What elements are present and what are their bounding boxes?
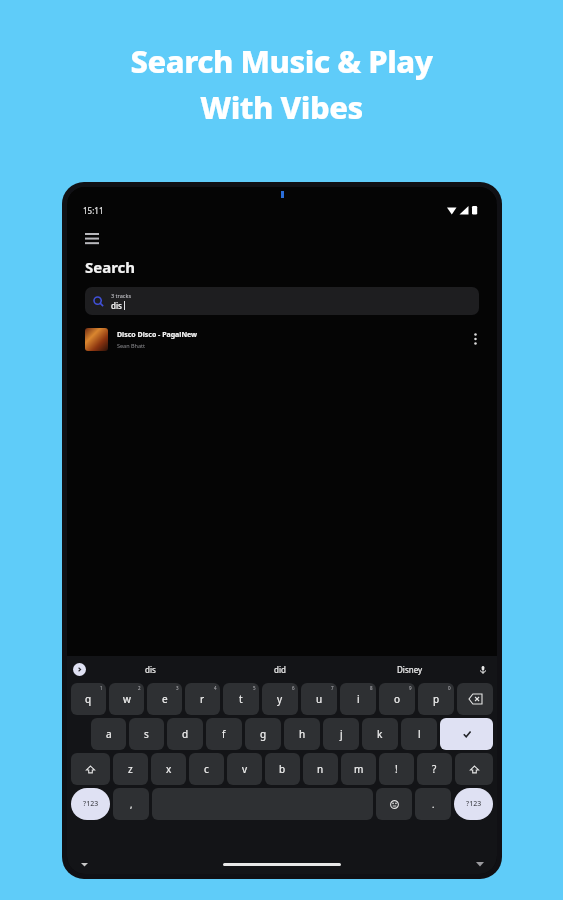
staticText: b [279,762,286,776]
button[interactable]: did [215,656,345,683]
staticText: , [130,798,133,810]
staticText: t [239,692,243,706]
button[interactable]: c [189,753,224,785]
button[interactable]: ?123 [454,788,493,820]
button[interactable]: q [71,683,106,715]
button[interactable]: m [341,753,376,785]
button[interactable]: a [91,718,126,750]
staticText: 4 [214,685,217,691]
button[interactable]: n [303,753,338,785]
button[interactable]: ? [417,753,452,785]
staticText: d [182,727,189,741]
button[interactable]: Comma [113,788,149,820]
button[interactable]: z [113,753,148,785]
staticText: 9 [409,685,412,691]
button[interactable]: v [227,753,262,785]
staticText: n [317,762,324,776]
staticText: a [106,727,112,741]
staticText: p [433,692,440,706]
staticText: g [260,727,267,741]
button[interactable]: b [265,753,300,785]
button[interactable]: ! [379,753,414,785]
staticText: e [162,692,168,706]
staticText: s [144,727,149,741]
button[interactable]: h [284,718,320,750]
staticText: u [316,692,323,706]
button[interactable]: t [223,683,259,715]
button[interactable]: s [129,718,164,750]
staticText: k [377,727,383,741]
button[interactable]: f [206,718,242,750]
button[interactable]: w [109,683,144,715]
staticText: 3 tracks [111,292,132,299]
button[interactable]: Enter [440,718,493,750]
staticText: 5 [253,685,256,691]
button[interactable]: Backspace [457,683,493,715]
staticText: c [204,762,209,776]
button[interactable]: Disney [345,656,475,683]
staticText: q [85,692,92,706]
button[interactable]: i [340,683,376,715]
staticText: m [354,762,364,776]
button[interactable]: p [418,683,454,715]
button[interactable]: o [379,683,415,715]
staticText: ?123 [83,799,99,809]
button[interactable]: g [245,718,281,750]
button[interactable]: ?123 [71,788,110,820]
button[interactable]: l [401,718,437,750]
staticText: Disco Disco - PagalNew [117,330,198,340]
staticText: Sean Bhatt [117,342,146,349]
button[interactable]: j [323,718,359,750]
button[interactable]: d [167,718,203,750]
staticText: . [432,798,435,810]
staticText: 8 [370,685,373,691]
staticText: 1 [100,685,103,691]
staticText: v [242,762,248,776]
staticText: x [166,762,172,776]
staticText: did [274,664,286,675]
button[interactable]: More options [465,329,485,349]
button[interactable]: k [362,718,398,750]
button[interactable]: Emoji [376,788,412,820]
staticText: r [200,692,205,706]
staticText: 15:11 [83,205,104,216]
staticText: ? [432,762,437,776]
staticText: l [418,727,421,741]
staticText: o [394,692,401,706]
button[interactable]: More suggestions [73,663,86,676]
staticText: h [299,727,306,741]
staticText: dis [145,664,156,675]
button[interactable]: r [185,683,220,715]
staticText: ! [395,762,398,776]
staticText: With Vibes [0,86,563,128]
staticText: f [222,727,226,741]
button[interactable]: dis [86,656,215,683]
button[interactable]: x [151,753,186,785]
button[interactable]: Period [415,788,451,820]
staticText: y [277,692,283,706]
staticText: j [340,727,343,741]
staticText: Search Music & Play [0,40,563,82]
staticText: 3 [176,685,179,691]
staticText: i [357,692,360,706]
staticText: 0 [448,685,451,691]
button[interactable]: Switch keyboard [473,857,487,871]
staticText: dis [111,300,123,311]
staticText: z [128,762,133,776]
button[interactable]: 3 tracks [85,287,479,315]
button[interactable]: Shift [71,753,110,785]
staticText: Disney [397,664,423,675]
staticText: 2 [138,685,141,691]
staticText: 7 [331,685,334,691]
staticText: ?123 [466,799,482,809]
staticText: w [123,692,131,706]
button[interactable]: e [147,683,182,715]
button[interactable]: Disco Disco - PagalNew [67,324,497,354]
button[interactable]: Open navigation menu [85,227,107,249]
button[interactable]: y [262,683,298,715]
button[interactable]: u [301,683,337,715]
button[interactable]: Voice input [475,662,491,678]
button[interactable]: Shift [455,753,493,785]
button[interactable]: Hide keyboard [77,857,91,871]
